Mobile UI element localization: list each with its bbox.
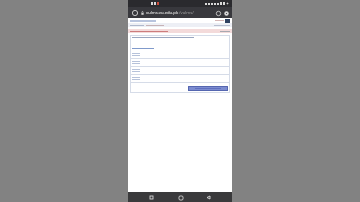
button[interactable]: More options	[223, 10, 229, 16]
button[interactable]	[130, 59, 230, 66]
button[interactable]: Recent apps	[147, 193, 156, 202]
staticText: vulms.vu.edu.pk	[146, 10, 179, 16]
button[interactable]	[188, 86, 228, 91]
staticText: /vulms/	[179, 10, 194, 16]
button[interactable]	[130, 67, 230, 74]
button[interactable]: Back	[204, 193, 213, 202]
button[interactable]: Reload	[215, 10, 221, 16]
button[interactable]	[130, 51, 230, 58]
button[interactable]: Home	[131, 9, 138, 16]
button[interactable]: vulms.vu.edu.pk	[146, 10, 214, 16]
button[interactable]	[130, 75, 230, 82]
button[interactable]: Home	[176, 193, 185, 202]
